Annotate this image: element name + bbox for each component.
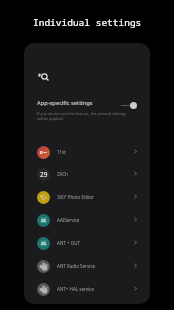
- button[interactable]: App-specific settings: [24, 95, 150, 123]
- staticText: 29Ch: [57, 171, 133, 177]
- staticText: 360° Photo Editor: [57, 194, 133, 200]
- button[interactable]: ANT+ HAL service: [24, 278, 150, 301]
- staticText: App-specific settings: [37, 99, 93, 107]
- button[interactable]: 360° Photo Editor: [24, 186, 150, 209]
- button[interactable]: 29: [24, 163, 150, 186]
- button[interactable]: ANT + OUT: [24, 232, 150, 255]
- staticText: will be applied.: [37, 116, 64, 121]
- staticText: 29: [40, 170, 48, 179]
- staticText: ANT Radio Service: [57, 263, 133, 269]
- button[interactable]: 11st: [24, 141, 150, 164]
- staticText: 11st: [57, 149, 133, 155]
- staticText: If you do not use this feature, the gene…: [37, 111, 127, 116]
- button[interactable]: AAIService: [24, 209, 150, 232]
- button[interactable]: ANT Radio Service: [24, 255, 150, 278]
- button[interactable]: Search: [37, 70, 51, 83]
- staticText: ANT+ HAL service: [57, 286, 133, 292]
- staticText: Individual settings: [33, 16, 142, 29]
- staticText: ANT + OUT: [57, 240, 133, 246]
- staticText: AAIService: [57, 217, 133, 223]
